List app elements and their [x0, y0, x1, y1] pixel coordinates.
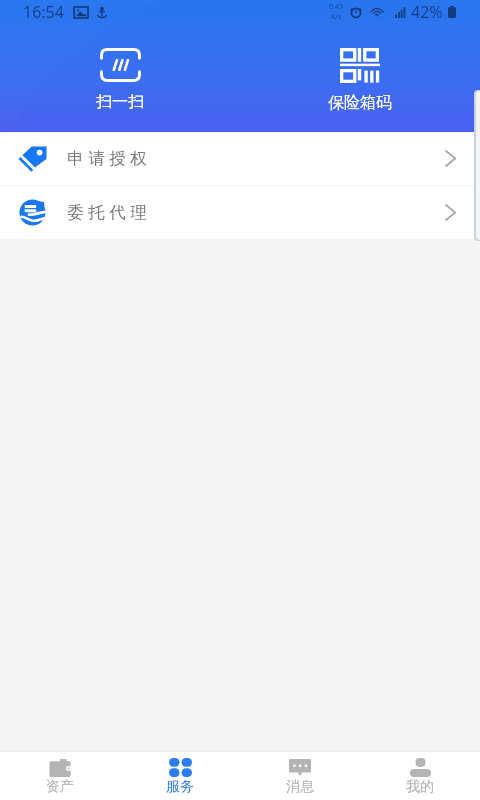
button[interactable]: 申请授权: [0, 132, 480, 185]
staticText: 我的: [406, 778, 434, 796]
staticText: 申请授权: [65, 148, 149, 169]
staticText: 保险箱码: [328, 93, 392, 113]
button[interactable]: 消息: [240, 752, 360, 800]
button[interactable]: 委托代理: [0, 186, 480, 239]
staticText: 服务: [166, 778, 194, 796]
staticText: 16:54: [23, 1, 64, 23]
staticText: 消息: [286, 778, 314, 796]
staticText: 0.43: [329, 2, 343, 12]
button[interactable]: 保险箱码: [240, 48, 480, 113]
button[interactable]: 我的: [360, 752, 480, 800]
button[interactable]: 资产: [0, 752, 120, 800]
other: 扫一扫: [100, 48, 141, 82]
button[interactable]: 服务: [120, 752, 240, 800]
staticText: K/s: [331, 12, 342, 22]
staticText: 扫一扫: [96, 92, 144, 112]
staticText: 委托代理: [65, 202, 149, 223]
staticText: 资产: [46, 778, 74, 796]
staticText: 42%: [411, 1, 443, 23]
other: 保险箱码: [340, 48, 380, 83]
button[interactable]: 扫一扫: [0, 48, 240, 112]
